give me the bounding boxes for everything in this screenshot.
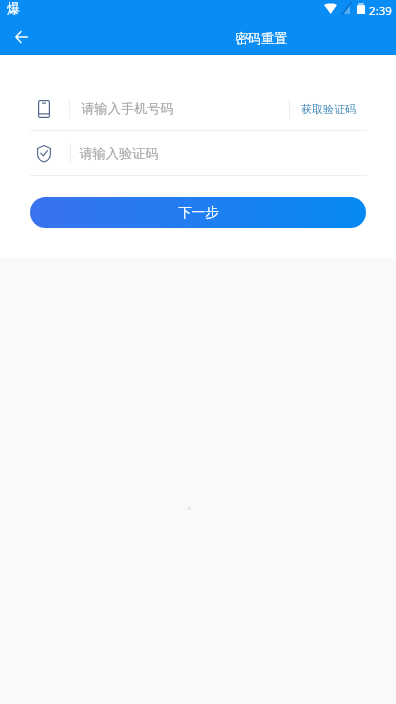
button[interactable]: 下一步 <box>30 197 366 228</box>
button[interactable]: 获取验证码 <box>290 102 367 116</box>
button[interactable]: Back <box>7 23 35 51</box>
staticText: 请输入手机号码 <box>81 100 174 117</box>
staticText: 2:39 <box>369 3 392 19</box>
staticText: 爆 <box>7 0 20 16</box>
staticText: 密码重置 <box>235 30 287 46</box>
staticText: 获取验证码 <box>301 102 356 116</box>
staticText: 请输入验证码 <box>79 145 159 162</box>
staticText: 下一步 <box>178 204 219 221</box>
